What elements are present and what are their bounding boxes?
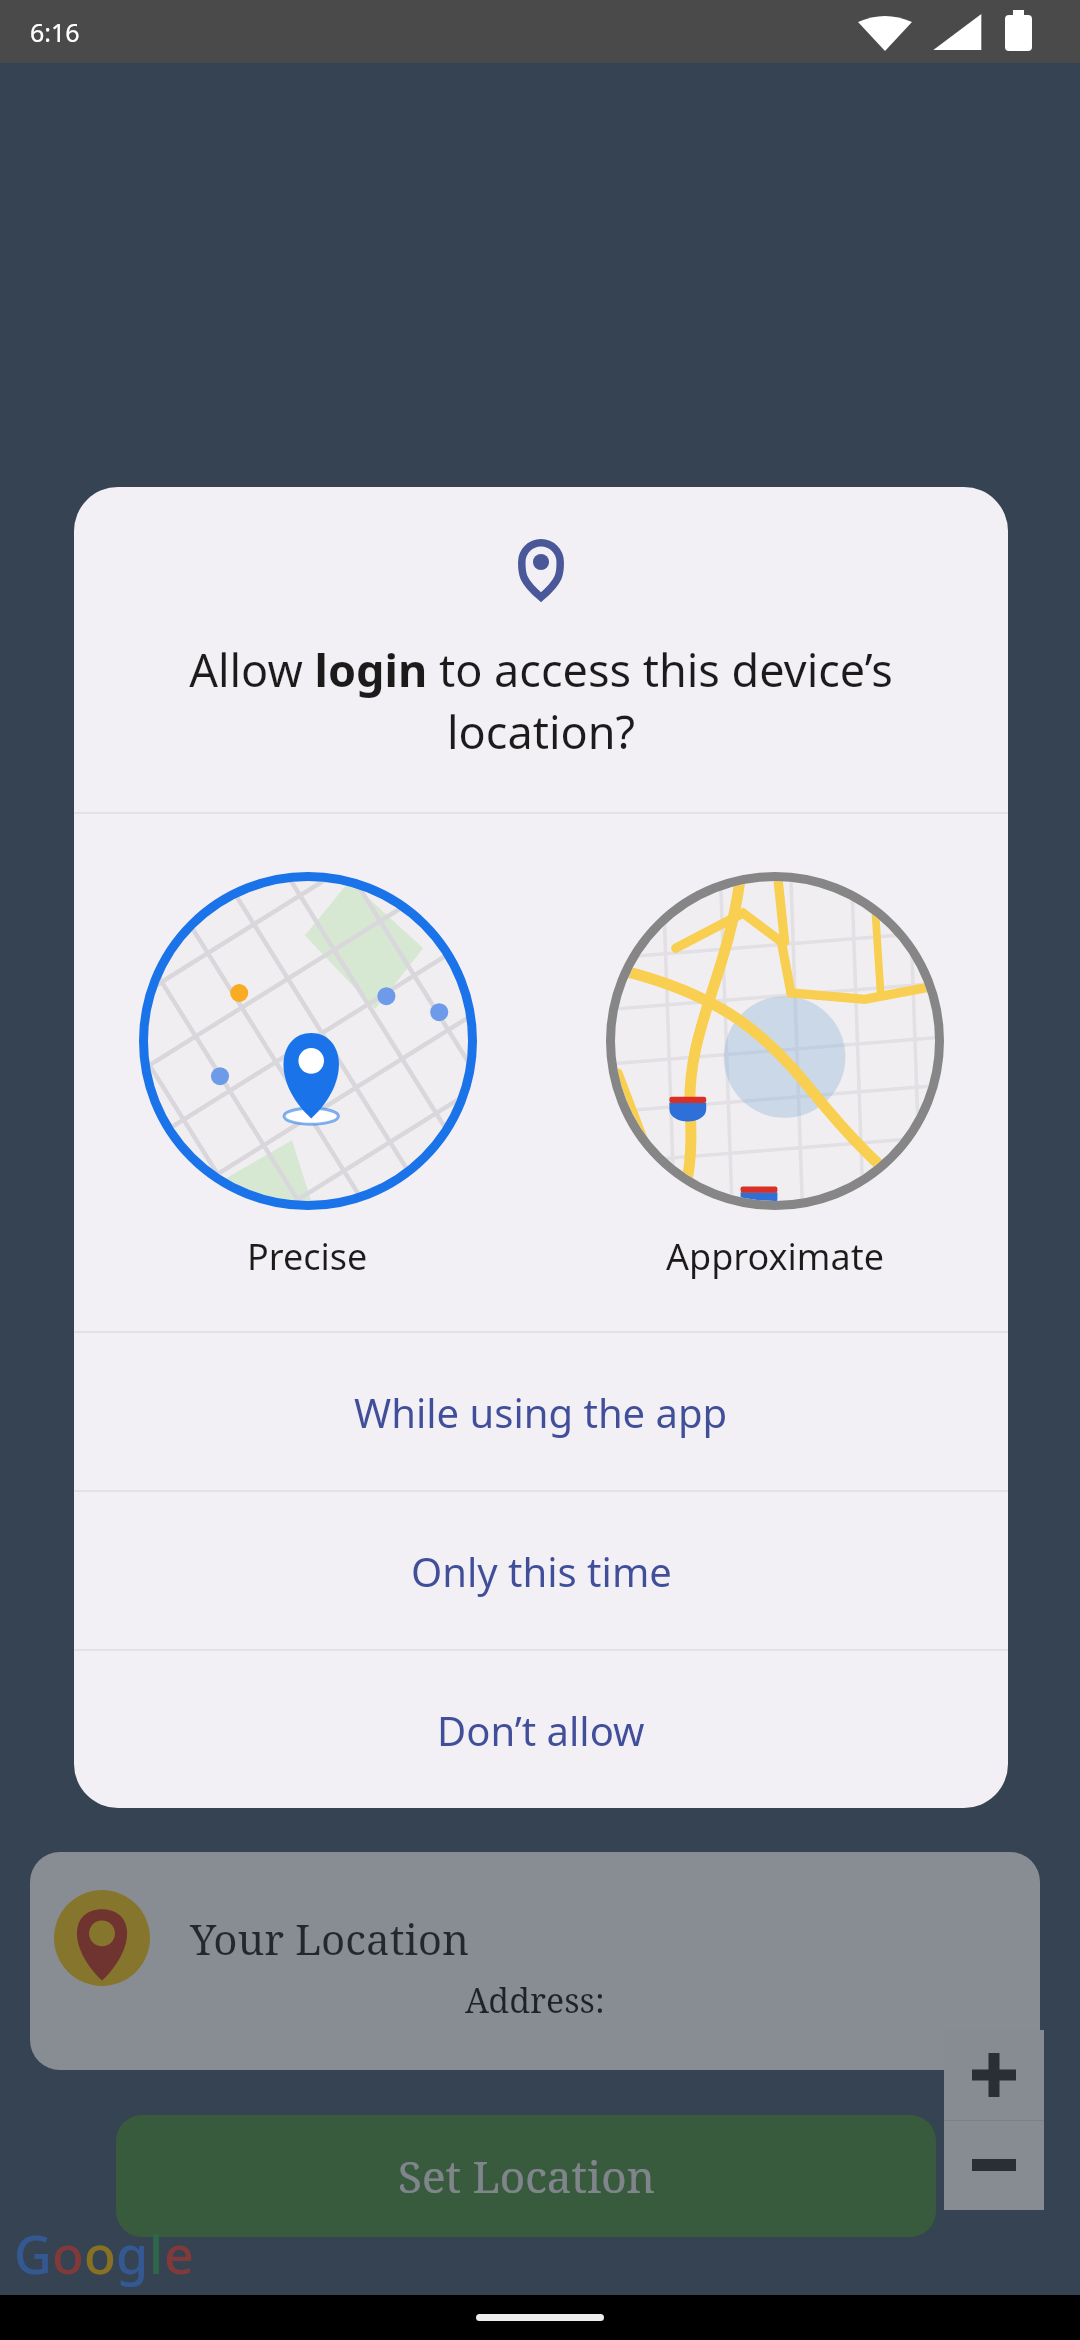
staticText: Approximate [666, 1232, 884, 1281]
staticText: o [52, 2218, 84, 2289]
button[interactable]: Your Location [30, 1852, 1040, 2070]
staticText: Don’t allow [437, 1703, 645, 1757]
staticText: While using the app [354, 1385, 728, 1439]
button[interactable]: Zoom in [944, 2030, 1044, 2120]
staticText: Only this time [411, 1544, 672, 1598]
button[interactable]: Precise [74, 872, 541, 1281]
staticText: e [164, 2218, 194, 2289]
staticText: G [14, 2218, 52, 2289]
button[interactable]: Set Location [116, 2115, 936, 2237]
staticText: g [116, 2218, 149, 2289]
button[interactable]: Approximate [541, 872, 1008, 1281]
staticText: 6:16 [30, 15, 80, 49]
staticText: Address: [465, 1977, 605, 2023]
staticText: Precise [247, 1232, 368, 1281]
staticText: l [149, 2218, 164, 2289]
button[interactable]: Only this time [74, 1492, 1008, 1649]
staticText: o [84, 2218, 116, 2289]
staticText: Your Location [190, 1910, 470, 1967]
staticText: Allow login to access this device’s loca… [126, 639, 956, 762]
staticText: Set Location [398, 2146, 655, 2206]
button[interactable]: Don’t allow [74, 1651, 1008, 1808]
button[interactable]: Zoom out [944, 2120, 1044, 2210]
button[interactable]: While using the app [74, 1333, 1008, 1490]
